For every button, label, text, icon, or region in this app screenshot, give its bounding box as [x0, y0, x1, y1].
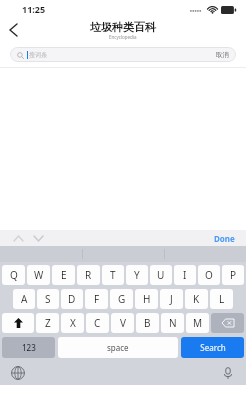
staticText: J: [170, 292, 173, 306]
button[interactable]: Shift: [2, 313, 34, 333]
button[interactable]: B: [136, 313, 159, 333]
staticText: P: [230, 268, 237, 282]
staticText: S: [45, 292, 51, 306]
staticText: L: [219, 292, 225, 306]
button[interactable]: N: [161, 313, 184, 333]
button[interactable]: O: [198, 265, 220, 285]
button[interactable]: Done: [214, 233, 235, 244]
button[interactable]: Backspace: [211, 313, 244, 333]
button[interactable]: I: [174, 265, 196, 285]
staticText: F: [94, 292, 100, 306]
staticText: A: [21, 292, 28, 306]
staticText: G: [118, 292, 126, 306]
staticText: T: [110, 268, 116, 282]
staticText: space: [107, 342, 129, 353]
button[interactable]: Switch keyboard language: [11, 366, 25, 380]
staticText: C: [94, 316, 101, 330]
button[interactable]: P: [222, 265, 244, 285]
staticText: Encyclopedia: [109, 34, 137, 40]
button[interactable]: T: [102, 265, 124, 285]
staticText: 搜词条: [29, 51, 47, 59]
staticText: H: [143, 292, 151, 306]
button[interactable]: Search: [181, 337, 244, 358]
staticText: X: [70, 316, 76, 330]
staticText: O: [205, 268, 213, 282]
button[interactable]: D: [61, 289, 83, 309]
staticText: V: [120, 316, 126, 330]
button[interactable]: 123: [2, 337, 55, 358]
button[interactable]: M: [186, 313, 209, 333]
button[interactable]: Y: [126, 265, 148, 285]
button[interactable]: 取消: [216, 51, 229, 59]
staticText: N: [169, 316, 177, 330]
button[interactable]: K: [185, 289, 208, 309]
staticText: E: [61, 268, 67, 282]
staticText: W: [34, 268, 44, 282]
staticText: 11:25: [22, 3, 46, 15]
staticText: R: [85, 268, 92, 282]
staticText: U: [157, 268, 165, 282]
button[interactable]: Next field: [30, 230, 46, 246]
button[interactable]: W: [27, 265, 50, 285]
button[interactable]: V: [111, 313, 134, 333]
staticText: 123: [22, 342, 36, 353]
staticText: Z: [45, 316, 51, 330]
button[interactable]: Back: [0, 18, 26, 42]
staticText: 取消: [216, 51, 229, 59]
staticText: 垃圾种类百科: [90, 20, 156, 34]
button[interactable]: G: [110, 289, 133, 309]
staticText: B: [144, 316, 151, 330]
button[interactable]: Voice input: [221, 366, 235, 380]
button[interactable]: A: [13, 289, 35, 309]
staticText: Done: [214, 233, 235, 244]
staticText: I: [183, 268, 187, 282]
button[interactable]: X: [61, 313, 84, 333]
staticText: Q: [10, 268, 18, 282]
staticText: D: [68, 292, 76, 306]
button[interactable]: E: [52, 265, 75, 285]
button[interactable]: L: [210, 289, 233, 309]
button[interactable]: Q: [2, 265, 25, 285]
staticText: K: [193, 292, 200, 306]
button[interactable]: U: [150, 265, 172, 285]
staticText: M: [193, 316, 203, 330]
button[interactable]: J: [160, 289, 183, 309]
staticText: Search: [200, 342, 226, 353]
button[interactable]: F: [85, 289, 108, 309]
button[interactable]: R: [77, 265, 100, 285]
button[interactable]: space: [58, 337, 178, 358]
staticText: Y: [134, 268, 140, 282]
button[interactable]: Z: [36, 313, 59, 333]
button[interactable]: S: [37, 289, 59, 309]
button[interactable]: 搜词条: [10, 47, 236, 62]
button[interactable]: H: [135, 289, 158, 309]
button[interactable]: Previous field: [10, 230, 26, 246]
button[interactable]: C: [86, 313, 109, 333]
